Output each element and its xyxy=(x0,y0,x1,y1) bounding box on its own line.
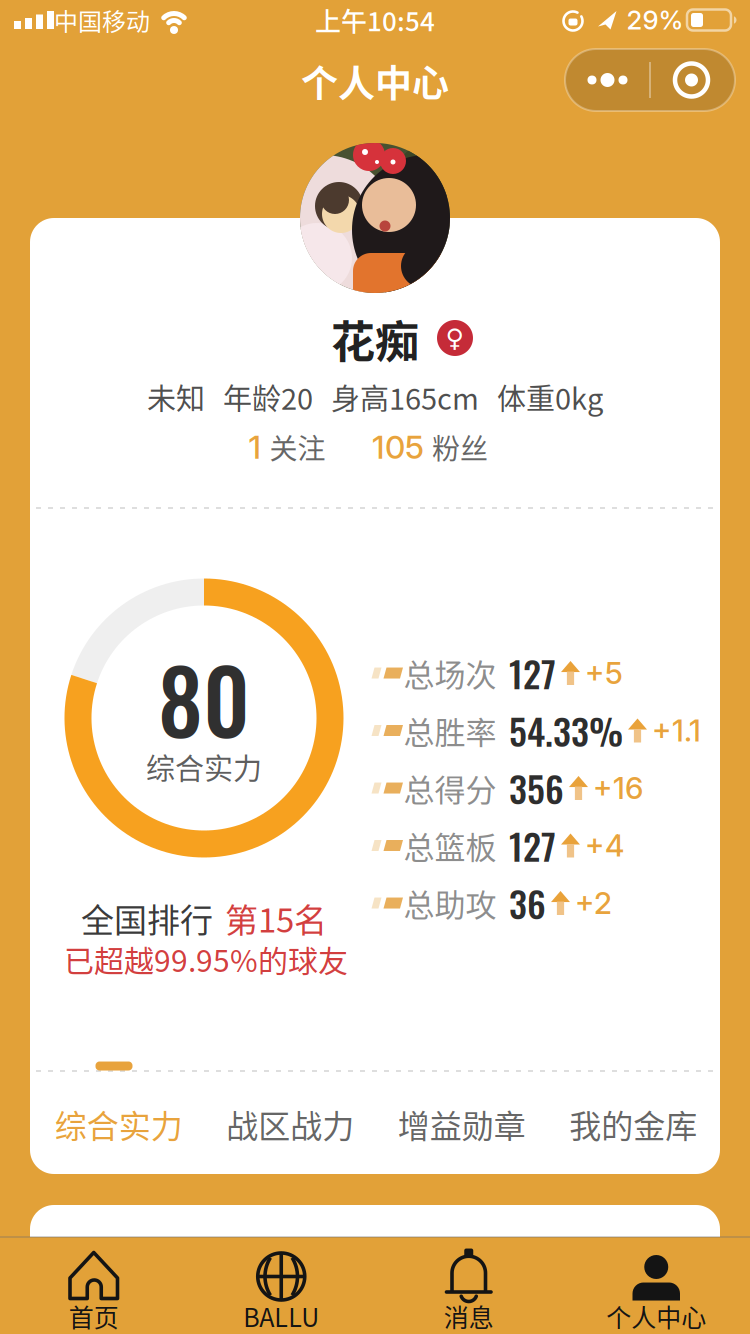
button[interactable]: 1 xyxy=(248,427,325,467)
staticText: 总篮板 xyxy=(403,823,496,868)
button[interactable]: 105 xyxy=(372,427,488,467)
button[interactable]: BALLU xyxy=(187,1237,375,1334)
button[interactable]: More xyxy=(565,49,650,111)
staticText: +2 xyxy=(575,885,612,921)
staticText: 综合实力 xyxy=(146,746,262,788)
button[interactable]: 战区战力 xyxy=(204,1094,376,1154)
staticText: 粉丝 xyxy=(432,427,488,467)
staticText: 个人中心 xyxy=(301,54,449,108)
staticText: 总场次 xyxy=(403,651,496,695)
button[interactable]: 首页 xyxy=(0,1237,187,1334)
staticText: 战区战力 xyxy=(226,1101,354,1147)
staticText: 第15名 xyxy=(225,894,327,942)
staticText: 105 xyxy=(372,428,424,466)
staticText: +16 xyxy=(593,770,643,806)
staticText: 356 xyxy=(509,761,564,815)
staticText: 全国排行 xyxy=(81,894,213,942)
staticText: 127 xyxy=(509,646,556,700)
staticText: 增益勋章 xyxy=(398,1101,526,1147)
staticText: 中国移动 xyxy=(54,3,150,37)
staticText: 总胜率 xyxy=(403,708,496,753)
staticText: BALLU xyxy=(243,1298,319,1334)
staticText: 1 xyxy=(248,428,261,466)
staticText: 80 xyxy=(158,633,250,763)
staticText: 我的金库 xyxy=(569,1101,697,1147)
staticText: 消息 xyxy=(444,1298,494,1334)
staticText: 36 xyxy=(509,876,546,930)
staticText: 首页 xyxy=(69,1298,119,1334)
staticText: 个人中心 xyxy=(606,1298,706,1334)
staticText: 综合实力 xyxy=(55,1101,183,1147)
staticText: 已超越99.95%的球友 xyxy=(64,937,348,981)
staticText: +5 xyxy=(585,655,623,691)
staticText: 关注 xyxy=(269,427,325,467)
staticText: 54.33% xyxy=(509,704,623,757)
staticText: 29% xyxy=(626,4,683,36)
button[interactable]: 增益勋章 xyxy=(376,1094,547,1154)
button[interactable]: 消息 xyxy=(375,1237,562,1334)
staticText: 总助攻 xyxy=(403,881,496,925)
button[interactable]: Close xyxy=(649,49,734,111)
staticText: 127 xyxy=(509,819,556,872)
staticText: 总得分 xyxy=(403,766,496,810)
staticText: +1.1 xyxy=(652,712,701,749)
button[interactable]: 个人中心 xyxy=(562,1237,750,1334)
button[interactable]: 我的金库 xyxy=(547,1094,719,1154)
staticText: 上午10:54 xyxy=(315,1,435,39)
button[interactable]: 综合实力 xyxy=(33,1094,204,1154)
staticText: +4 xyxy=(585,827,624,864)
staticText: 花痴 xyxy=(331,307,419,371)
staticText: ♀ xyxy=(445,324,464,352)
staticText: 未知 年龄20 身高165cm 体重0kg xyxy=(147,376,603,418)
